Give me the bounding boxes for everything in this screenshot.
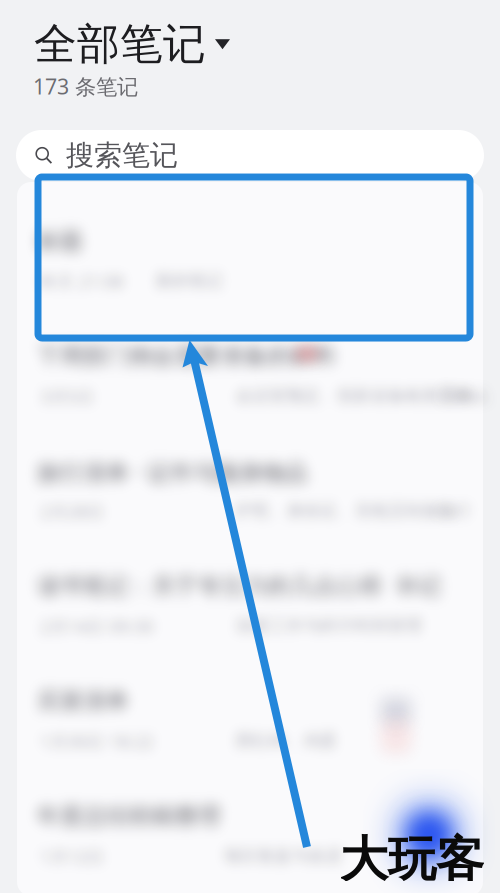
- button[interactable]: 买菜清单: [37, 682, 471, 797]
- button[interactable]: 全部笔记: [0, 0, 248, 74]
- button[interactable]: 标题: [37, 222, 471, 337]
- staticText: 大玩客: [340, 830, 484, 889]
- button[interactable]: 新建笔记: [406, 812, 458, 864]
- staticText: 搜索笔记: [66, 138, 178, 173]
- staticText: 173 条笔记: [33, 72, 138, 100]
- button[interactable]: 搜索笔记: [16, 130, 484, 181]
- button[interactable]: 下周部门例会需要准备的材料: [37, 337, 471, 452]
- button[interactable]: 读书笔记：关于专注力的几点心得 补记: [37, 567, 471, 682]
- button[interactable]: 旅行清单 · 证件与随身物品: [37, 452, 471, 567]
- button[interactable]: 年度总结初稿整理: [37, 797, 471, 893]
- staticText: 全部笔记: [34, 18, 206, 70]
